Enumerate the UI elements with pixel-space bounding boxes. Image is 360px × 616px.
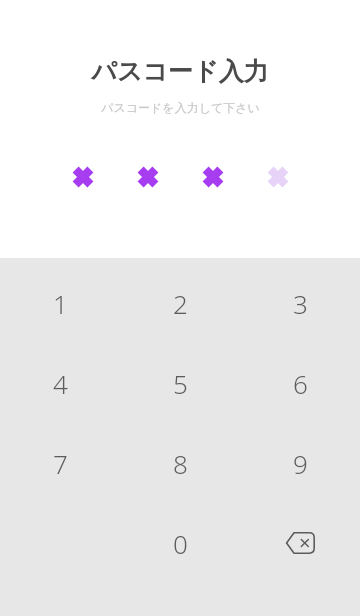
button[interactable]: 7 [0, 423, 120, 503]
staticText: 6 [293, 366, 308, 401]
staticText: 8 [173, 446, 188, 481]
button[interactable]: 2 [120, 263, 240, 343]
staticText: 0 [173, 526, 188, 561]
staticText: 4 [53, 366, 68, 401]
button[interactable]: 6 [240, 343, 360, 423]
button[interactable]: Backspace [240, 503, 360, 583]
staticText: 3 [293, 286, 308, 321]
button[interactable]: 9 [240, 423, 360, 503]
staticText: 1 [53, 286, 68, 321]
button[interactable]: 0 [120, 503, 240, 583]
button[interactable]: 4 [0, 343, 120, 423]
staticText: 5 [173, 366, 188, 401]
staticText: 2 [173, 286, 188, 321]
staticText: パスコード入力 [91, 56, 269, 87]
staticText: パスコードを入力して下さい [101, 100, 260, 115]
staticText: 9 [293, 446, 308, 481]
staticText: 7 [53, 446, 68, 481]
button[interactable]: 8 [120, 423, 240, 503]
button[interactable]: 5 [120, 343, 240, 423]
button[interactable]: 1 [0, 263, 120, 343]
button[interactable]: 3 [240, 263, 360, 343]
